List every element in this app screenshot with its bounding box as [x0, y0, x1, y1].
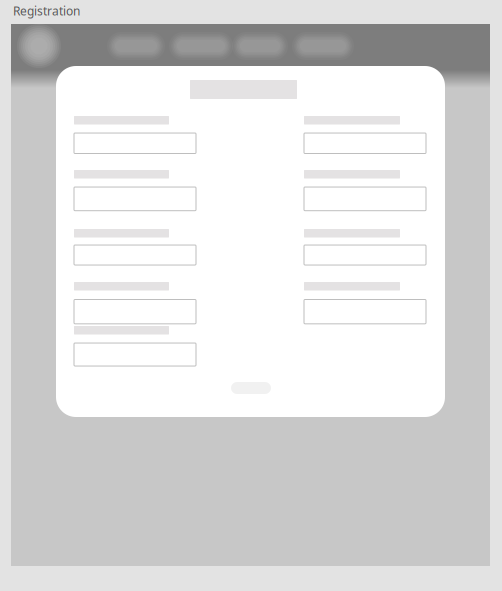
button[interactable]: Submit: [231, 382, 271, 394]
button[interactable]: Text field: [304, 299, 426, 324]
button[interactable]: Text field: [304, 133, 426, 153]
button[interactable]: Text field: [304, 187, 426, 211]
button[interactable]: Text field: [74, 299, 196, 324]
button[interactable]: Menu item: [232, 32, 288, 60]
button[interactable]: Menu item: [169, 32, 233, 60]
button[interactable]: Menu item: [107, 32, 165, 60]
staticText: Registration: [13, 3, 80, 19]
button[interactable]: Text field: [74, 245, 196, 265]
button[interactable]: Menu item: [292, 32, 354, 60]
button[interactable]: Text field: [304, 245, 426, 265]
button[interactable]: Text field: [74, 187, 196, 211]
button[interactable]: Text field: [74, 343, 196, 366]
button[interactable]: Text field: [74, 133, 196, 153]
